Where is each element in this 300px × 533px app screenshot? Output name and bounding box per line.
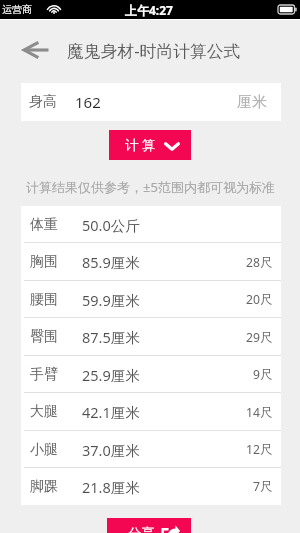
- staticText: 20尺: [246, 291, 273, 308]
- staticText: 28尺: [246, 254, 273, 271]
- button[interactable]: 体重: [21, 206, 281, 243]
- button[interactable]: Back: [10, 25, 60, 75]
- staticText: 脚踝: [30, 478, 58, 496]
- button[interactable]: 手臂: [21, 356, 281, 393]
- staticText: 42.1厘米: [82, 402, 140, 422]
- staticText: 87.5厘米: [82, 327, 140, 347]
- staticText: 臀围: [30, 328, 58, 346]
- button[interactable]: 小腿: [21, 431, 281, 468]
- staticText: 小腿: [30, 441, 58, 459]
- staticText: 14尺: [246, 404, 273, 421]
- staticText: 体重: [30, 216, 58, 234]
- staticText: 运营商: [2, 3, 32, 16]
- staticText: 腰围: [30, 291, 58, 309]
- staticText: 21.8厘米: [82, 477, 140, 497]
- staticText: 50.0公斤: [82, 215, 140, 235]
- staticText: 9尺: [253, 366, 273, 383]
- staticText: 厘米: [237, 93, 267, 112]
- staticText: 手臂: [30, 366, 58, 384]
- staticText: 59.9厘米: [82, 290, 140, 310]
- button[interactable]: 大腿: [21, 393, 281, 431]
- staticText: 胸围: [30, 253, 58, 271]
- staticText: 29尺: [246, 329, 273, 346]
- button[interactable]: 臀围: [21, 318, 281, 356]
- button[interactable]: 脚踝: [21, 468, 281, 505]
- staticText: 身高: [29, 93, 57, 111]
- staticText: 25.9厘米: [82, 365, 140, 385]
- staticText: 大腿: [30, 403, 58, 421]
- button[interactable]: 腰围: [21, 281, 281, 318]
- staticText: 计 算: [125, 136, 156, 154]
- button[interactable]: 计 算: [109, 130, 191, 160]
- staticText: 7尺: [253, 478, 273, 495]
- button[interactable]: 分享: [107, 518, 191, 533]
- staticText: 魔鬼身材-时尚计算公式: [67, 39, 241, 62]
- staticText: 37.0厘米: [82, 440, 140, 460]
- staticText: 计算结果仅供参考，±5范围内都可视为标准: [26, 178, 275, 196]
- staticText: 85.9厘米: [82, 252, 140, 272]
- staticText: 12尺: [246, 441, 273, 458]
- staticText: 上午4:27: [125, 2, 173, 18]
- staticText: 分享: [128, 525, 155, 533]
- button[interactable]: 胸围: [21, 243, 281, 281]
- button[interactable]: 身高: [21, 83, 281, 121]
- staticText: 162: [75, 92, 101, 112]
